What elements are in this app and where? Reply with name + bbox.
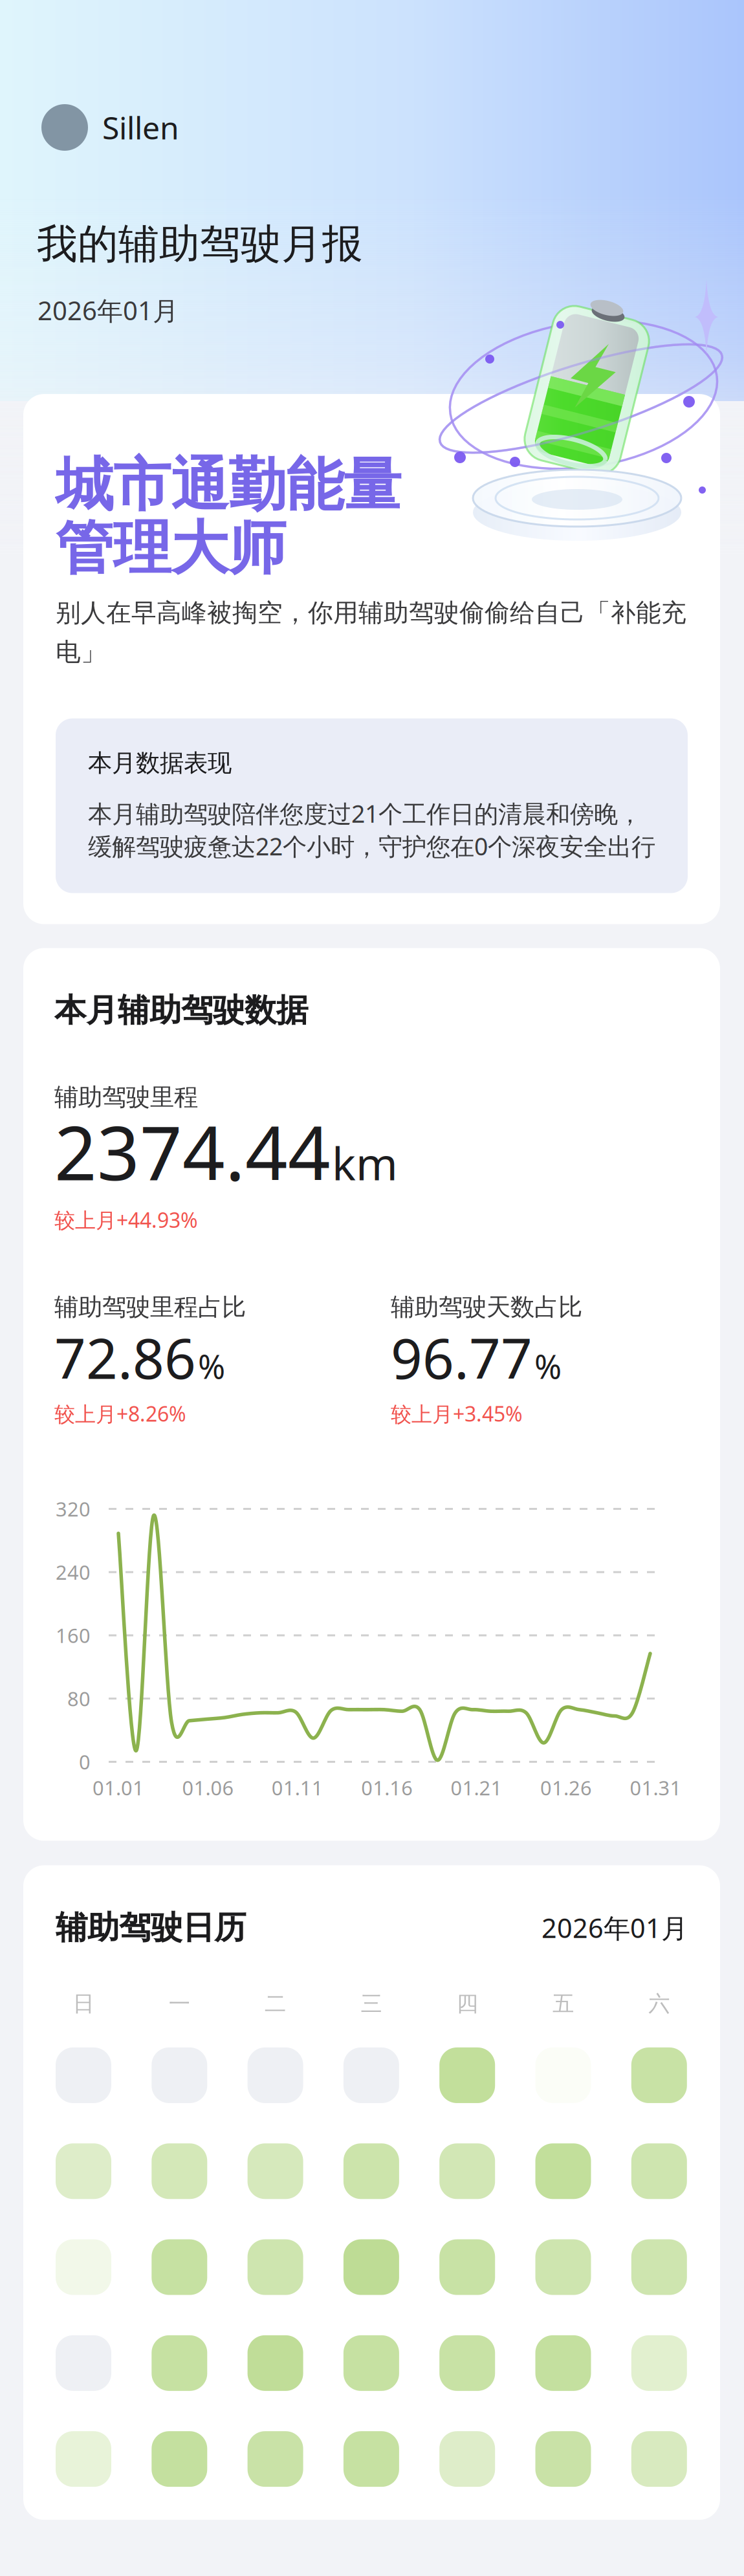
staticText: km bbox=[332, 1133, 398, 1193]
staticText: 96.77 bbox=[391, 1321, 532, 1394]
staticText: % bbox=[534, 1344, 562, 1388]
staticText: 五 bbox=[553, 1991, 574, 2017]
staticText: 01.31 bbox=[630, 1775, 682, 1801]
staticText: 0 bbox=[79, 1749, 91, 1775]
staticText: 2026年01月 bbox=[38, 293, 179, 327]
staticText: 较上月+44.93% bbox=[54, 1206, 198, 1234]
staticText: 辅助驾驶里程占比 bbox=[54, 1292, 246, 1322]
staticText: 2374.44 bbox=[54, 1102, 331, 1201]
staticText: Sillen bbox=[102, 107, 179, 148]
staticText: 160 bbox=[56, 1622, 91, 1649]
staticText: 80 bbox=[67, 1685, 91, 1712]
staticText: 2026年01月 bbox=[542, 1910, 688, 1945]
staticText: 320 bbox=[56, 1496, 91, 1522]
staticText: 01.16 bbox=[361, 1775, 413, 1801]
staticText: 较上月+8.26% bbox=[54, 1400, 186, 1427]
staticText: 本月辅助驾驶陪伴您度过21个工作日的清晨和傍晚，缓解驾驶疲惫达22个小时，守护您… bbox=[88, 797, 655, 862]
staticText: 我的辅助驾驶月报 bbox=[37, 219, 363, 269]
staticText: 01.26 bbox=[540, 1775, 592, 1801]
staticText: 城市通勤能量 bbox=[56, 450, 401, 521]
staticText: 一 bbox=[169, 1991, 190, 2017]
staticText: 六 bbox=[648, 1991, 670, 2017]
staticText: 本月数据表现 bbox=[88, 748, 232, 778]
button[interactable]: Sillen bbox=[0, 104, 744, 151]
staticText: 240 bbox=[56, 1559, 91, 1585]
staticText: 01.21 bbox=[451, 1775, 502, 1801]
staticText: 日 bbox=[73, 1991, 94, 2017]
staticText: 辅助驾驶里程 bbox=[54, 1082, 198, 1112]
staticText: 辅助驾驶天数占比 bbox=[391, 1292, 582, 1322]
staticText: 较上月+3.45% bbox=[391, 1400, 523, 1427]
staticText: 72.86 bbox=[54, 1321, 196, 1394]
staticText: 01.01 bbox=[93, 1775, 144, 1801]
staticText: 辅助驾驶日历 bbox=[56, 1908, 246, 1947]
staticText: 四 bbox=[457, 1991, 478, 2017]
staticText: 二 bbox=[265, 1991, 286, 2017]
staticText: 01.11 bbox=[272, 1775, 323, 1801]
staticText: 别人在早高峰被掏空，你用辅助驾驶偷偷给自己「补能充电」 bbox=[56, 597, 686, 667]
staticText: 管理大师 bbox=[56, 513, 286, 584]
staticText: 三 bbox=[361, 1991, 382, 2017]
staticText: % bbox=[198, 1344, 225, 1388]
staticText: 01.06 bbox=[182, 1775, 234, 1801]
staticText: 本月辅助驾驶数据 bbox=[54, 991, 308, 1030]
